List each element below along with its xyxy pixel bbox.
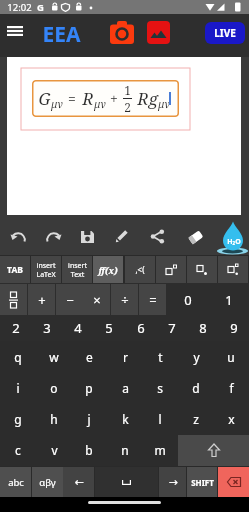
staticText: insert Text: [68, 261, 87, 279]
staticText: f: [229, 380, 234, 396]
button[interactable]: [109, 19, 135, 45]
button[interactable]: i: [0, 372, 36, 403]
staticText: t: [158, 349, 163, 365]
button[interactable]: [4, 22, 26, 40]
button[interactable]: [178, 435, 249, 466]
button[interactable]: →: [159, 467, 186, 497]
staticText: −: [66, 291, 74, 309]
staticText: μν: [158, 97, 170, 111]
button[interactable]: s: [142, 372, 178, 403]
button[interactable]: x: [213, 403, 249, 434]
button[interactable]: 1: [208, 284, 249, 315]
button[interactable]: [44, 229, 62, 245]
button[interactable]: ,<(: [125, 256, 155, 283]
button[interactable]: [114, 229, 129, 244]
button[interactable]: r: [107, 341, 143, 372]
staticText: R: [82, 87, 94, 110]
staticText: 3: [43, 319, 51, 337]
button[interactable]: insert LaTeX: [31, 256, 61, 283]
staticText: αβγ: [39, 476, 56, 489]
button[interactable]: [146, 19, 171, 45]
button[interactable]: 8: [187, 315, 218, 341]
button[interactable]: a: [107, 372, 143, 403]
button[interactable]: w: [36, 341, 72, 372]
staticText: TAB: [7, 264, 23, 276]
button[interactable]: y: [178, 341, 214, 372]
button[interactable]: [187, 229, 204, 245]
staticText: a: [122, 380, 129, 396]
staticText: 8: [199, 319, 207, 337]
button[interactable]: [187, 256, 217, 283]
button[interactable]: f: [213, 372, 249, 403]
button[interactable]: q: [0, 341, 36, 372]
button[interactable]: αβγ: [32, 467, 63, 497]
button[interactable]: [156, 256, 186, 283]
button[interactable]: +: [28, 284, 55, 315]
button[interactable]: [218, 467, 249, 497]
button[interactable]: ff(x): [93, 256, 123, 283]
button[interactable]: 6: [125, 315, 156, 341]
button[interactable]: ×: [83, 284, 110, 315]
button[interactable]: d: [178, 372, 214, 403]
staticText: g: [14, 411, 22, 427]
button[interactable]: o: [36, 372, 72, 403]
button[interactable]: abc: [0, 467, 31, 497]
button[interactable]: 7: [156, 315, 187, 341]
button[interactable]: 2: [0, 315, 31, 341]
staticText: 0: [184, 291, 192, 309]
button[interactable]: [10, 229, 28, 245]
button[interactable]: 4: [62, 315, 93, 341]
staticText: 1: [225, 291, 233, 309]
staticText: μν: [51, 97, 63, 111]
button[interactable]: insert Text: [62, 256, 92, 283]
button[interactable]: j: [71, 403, 107, 434]
button[interactable]: LIVE: [205, 22, 245, 44]
button[interactable]: 3: [31, 315, 62, 341]
button[interactable]: n: [107, 434, 143, 465]
button[interactable]: 0: [167, 284, 208, 315]
button[interactable]: −: [56, 284, 83, 315]
staticText: ,<(: [135, 264, 145, 275]
button[interactable]: p: [71, 372, 107, 403]
button[interactable]: m: [142, 434, 178, 465]
staticText: ÷: [121, 291, 129, 309]
staticText: ×: [93, 291, 101, 309]
staticText: q: [14, 349, 22, 365]
staticText: p: [85, 380, 93, 396]
button[interactable]: =: [139, 284, 166, 315]
staticText: 9: [230, 319, 238, 337]
button[interactable]: ←: [63, 467, 94, 497]
button[interactable]: TAB: [0, 256, 30, 283]
button[interactable]: H₂O: [216, 221, 249, 255]
button[interactable]: 5: [93, 315, 124, 341]
staticText: 2: [12, 319, 20, 337]
staticText: G: [38, 87, 51, 110]
staticText: u: [227, 349, 235, 365]
button[interactable]: [150, 229, 165, 244]
button[interactable]: u: [213, 341, 249, 372]
button[interactable]: v: [36, 434, 72, 465]
button[interactable]: c: [0, 434, 36, 465]
button[interactable]: l: [142, 403, 178, 434]
staticText: d: [192, 380, 200, 396]
button[interactable]: ÷: [111, 284, 138, 315]
button[interactable]: z: [178, 403, 214, 434]
staticText: G: [37, 1, 44, 14]
button[interactable]: [218, 256, 248, 283]
staticText: c: [15, 442, 21, 458]
button[interactable]: [0, 284, 27, 315]
button[interactable]: SHIFT: [187, 467, 217, 497]
button[interactable]: g: [0, 403, 36, 434]
button[interactable]: t: [142, 341, 178, 372]
button[interactable]: h: [36, 403, 72, 434]
button[interactable]: e: [71, 341, 107, 372]
staticText: =: [149, 291, 157, 309]
staticText: Rg: [137, 87, 158, 110]
staticText: ff(x): [98, 264, 118, 276]
button[interactable]: [81, 229, 95, 244]
button[interactable]: 9: [218, 315, 249, 341]
button[interactable]: b: [71, 434, 107, 465]
staticText: 2: [124, 99, 131, 115]
button[interactable]: [95, 467, 158, 497]
button[interactable]: k: [107, 403, 143, 434]
